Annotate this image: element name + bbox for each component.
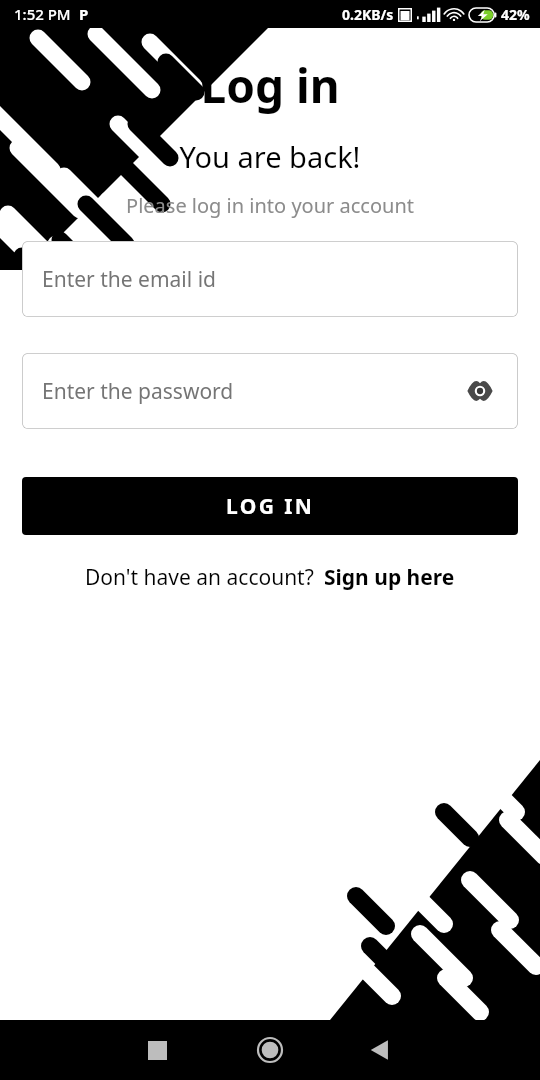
button[interactable]: Show password xyxy=(460,371,500,411)
staticText: 0.2KB/s xyxy=(342,5,394,24)
staticText: P xyxy=(79,4,89,24)
staticText: 1:52 PM xyxy=(14,4,71,24)
button[interactable]: Sign up here xyxy=(324,563,455,592)
staticText: You are back! xyxy=(0,137,540,176)
button[interactable]: Home xyxy=(244,1024,296,1076)
button[interactable]: Back xyxy=(356,1026,404,1074)
staticText: Enter the email id xyxy=(42,265,216,294)
staticText: Enter the password xyxy=(42,377,234,406)
button[interactable]: Enter the email id xyxy=(22,241,518,317)
staticText: 42% xyxy=(501,5,530,24)
staticText: Please log in into your account xyxy=(0,192,540,219)
staticText: LOG IN xyxy=(226,492,315,521)
button[interactable]: Recent apps xyxy=(133,1026,181,1074)
staticText: Don't have an account? xyxy=(85,563,314,592)
staticText: Log in xyxy=(0,54,540,117)
button[interactable]: LOG IN xyxy=(22,477,518,535)
staticText: Sign up here xyxy=(324,563,455,592)
button[interactable]: Enter the password xyxy=(22,353,518,429)
